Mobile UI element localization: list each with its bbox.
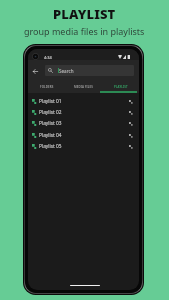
staticText: Playlist 03 (39, 120, 62, 127)
button[interactable]: PLAYLIST (102, 82, 139, 92)
staticText: Playlist 04 (39, 132, 62, 139)
button[interactable]: Playlist 05 (28, 141, 139, 152)
button[interactable]: Playlist 04 (28, 130, 139, 141)
button[interactable]: FOLDERS (28, 82, 65, 92)
button[interactable]: Search (45, 65, 134, 76)
button[interactable]: More options (126, 142, 135, 151)
staticText: group media files in playlists (24, 25, 145, 37)
staticText: Playlist 01 (39, 98, 62, 105)
button[interactable]: MEDIA FILES (65, 82, 102, 92)
staticText: Search (59, 68, 74, 74)
staticText: PLAYLIST (114, 85, 128, 89)
button[interactable]: More options (126, 97, 135, 106)
staticText: PLAYLIST (53, 5, 116, 23)
button[interactable]: Playlist 01 (28, 96, 139, 107)
staticText: Playlist 02 (39, 109, 62, 116)
button[interactable]: More options (126, 108, 135, 117)
button[interactable]: More options (126, 119, 135, 128)
staticText: MEDIA FILES (74, 85, 93, 89)
staticText: FOLDERS (40, 85, 54, 89)
staticText: 4:34 (44, 55, 52, 60)
button[interactable]: Playlist 03 (28, 118, 139, 129)
button[interactable]: More options (126, 131, 135, 140)
button[interactable]: Back (30, 66, 40, 76)
staticText: Playlist 05 (39, 143, 62, 150)
button[interactable]: Playlist 02 (28, 107, 139, 118)
